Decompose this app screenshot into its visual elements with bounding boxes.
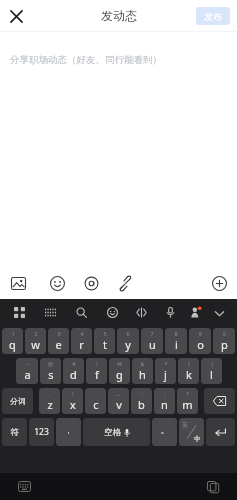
staticText: q xyxy=(9,337,16,352)
staticText: - xyxy=(95,390,97,397)
staticText: 分享职场动态（好友、同行能看到） xyxy=(10,54,162,66)
staticText: 3 xyxy=(57,330,61,337)
staticText: e xyxy=(55,337,62,352)
button[interactable]: 9 xyxy=(189,328,211,354)
button[interactable]: 符 xyxy=(2,418,27,446)
button[interactable]: Comma xyxy=(56,418,81,446)
button[interactable]: Search xyxy=(76,307,87,318)
staticText: u xyxy=(149,337,156,352)
button[interactable]: 5 xyxy=(94,328,115,354)
button[interactable]: 分词 xyxy=(2,388,33,414)
staticText: x xyxy=(70,397,76,412)
staticText: 空格 xyxy=(104,427,121,438)
button[interactable]: Backspace xyxy=(204,388,235,414)
staticText: a xyxy=(24,367,31,382)
button[interactable]: More xyxy=(212,276,227,291)
staticText: 发动态 xyxy=(101,8,137,23)
button[interactable]: 8 xyxy=(165,328,187,354)
staticText: ; xyxy=(164,390,166,397)
staticText: # xyxy=(72,360,76,367)
staticText: v xyxy=(116,397,122,412)
button[interactable]: … xyxy=(108,388,129,414)
staticText: 5 xyxy=(103,330,107,337)
button[interactable]: 0 xyxy=(213,328,235,354)
staticText: ) xyxy=(211,360,213,367)
button[interactable]: 、 xyxy=(39,388,60,414)
button[interactable]: Period xyxy=(152,418,177,446)
button[interactable]: - xyxy=(85,388,106,414)
button[interactable]: Clipboard xyxy=(136,307,147,318)
staticText: h xyxy=(139,367,146,382)
staticText: ? xyxy=(186,390,189,397)
staticText: z xyxy=(47,397,53,412)
button[interactable]: Hide keyboard xyxy=(18,481,31,492)
staticText: b xyxy=(138,397,145,412)
button[interactable]: ~ xyxy=(16,358,38,384)
button[interactable]: % xyxy=(109,358,130,384)
button[interactable]: Emoji xyxy=(50,276,65,291)
button[interactable]: ; xyxy=(154,388,175,414)
button[interactable]: * xyxy=(155,358,176,384)
button[interactable]: 3 xyxy=(48,328,69,354)
button[interactable]: 6 xyxy=(117,328,139,354)
button[interactable]: Mention xyxy=(84,276,99,291)
staticText: … xyxy=(116,390,121,397)
button[interactable]: 发布 xyxy=(196,7,230,25)
staticText: 发布 xyxy=(204,11,222,22)
button[interactable]: 7 xyxy=(141,328,163,354)
button[interactable]: 4 xyxy=(71,328,92,354)
button[interactable]: Hide keyboard xyxy=(214,308,225,319)
staticText: 2 xyxy=(34,330,38,337)
button[interactable]: 123 xyxy=(29,418,54,446)
staticText: % xyxy=(117,360,122,367)
staticText: p xyxy=(221,337,228,352)
button[interactable]: Close xyxy=(0,0,32,32)
staticText: & xyxy=(140,360,145,367)
staticText: m xyxy=(182,397,193,412)
staticText: 8 xyxy=(174,330,178,337)
staticText: 符 xyxy=(10,427,19,438)
button[interactable]: Grid xyxy=(14,307,25,318)
button[interactable]: Emoji xyxy=(107,307,118,318)
button[interactable]: # xyxy=(63,358,84,384)
button[interactable]: & xyxy=(132,358,153,384)
button[interactable]: Profile xyxy=(190,307,201,318)
staticText: 0 xyxy=(222,330,226,337)
staticText: 分词 xyxy=(10,396,26,406)
staticText: s xyxy=(48,367,54,382)
staticText: y xyxy=(125,337,131,352)
button[interactable]: Switch English Chinese xyxy=(179,418,204,446)
button[interactable]: 空格 xyxy=(83,418,150,446)
staticText: l xyxy=(210,367,213,382)
button[interactable]: Keyboard xyxy=(45,307,56,318)
button[interactable]: ( xyxy=(178,358,199,384)
button[interactable]: @ xyxy=(40,358,61,384)
staticText: 7 xyxy=(150,330,154,337)
staticText: ， xyxy=(65,426,72,435)
button[interactable]: / xyxy=(62,388,83,414)
staticText: 、 xyxy=(47,390,53,397)
staticText: d xyxy=(70,367,77,382)
button[interactable]: ) xyxy=(201,358,222,384)
button[interactable]: Link xyxy=(118,276,133,291)
staticText: ~ xyxy=(25,360,29,367)
button[interactable]: Enter xyxy=(206,418,235,446)
staticText: k xyxy=(186,367,192,382)
button[interactable]: : xyxy=(131,388,152,414)
staticText: g xyxy=(116,367,123,382)
button[interactable]: Voice input xyxy=(165,307,176,318)
button[interactable]: ! xyxy=(86,358,107,384)
button[interactable]: 2 xyxy=(25,328,46,354)
staticText: f xyxy=(95,367,99,382)
staticText: i xyxy=(175,337,178,352)
staticText: w xyxy=(31,337,40,352)
button[interactable]: Recent apps xyxy=(207,481,219,493)
button[interactable]: 1 xyxy=(2,328,23,354)
staticText: 。 xyxy=(161,426,168,435)
staticText: 123 xyxy=(34,426,49,438)
staticText: 6 xyxy=(126,330,130,337)
button[interactable]: Add image xyxy=(11,276,26,291)
staticText: @ xyxy=(48,360,53,367)
button[interactable]: ? xyxy=(177,388,198,414)
staticText: o xyxy=(197,337,204,352)
